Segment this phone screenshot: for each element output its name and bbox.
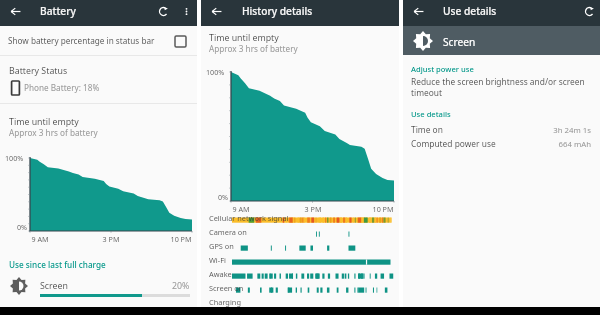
staticText: Awake [209, 269, 232, 279]
staticText: 10 PM [367, 204, 399, 214]
staticText: Charging [209, 297, 241, 307]
staticText: Use details [411, 109, 451, 119]
staticText: Approx 3 hrs of battery [209, 43, 298, 54]
staticText: 20% [172, 280, 190, 292]
staticText: Screen on [209, 283, 244, 293]
staticText: Time until empty [9, 116, 79, 128]
staticText: Cellular network signal [209, 213, 289, 223]
staticText: Battery [40, 4, 76, 18]
staticText: 3 PM [299, 204, 327, 214]
staticText: Adjust power use [411, 64, 474, 74]
staticText: Approx 3 hrs of battery [9, 127, 98, 138]
staticText: 0% [17, 222, 28, 232]
button[interactable]: Refresh [152, 0, 174, 22]
staticText: Screen [40, 280, 68, 292]
staticText: 100% [5, 153, 24, 163]
staticText: Use details [443, 4, 497, 18]
button[interactable]: Back [403, 0, 433, 26]
staticText: 664 mAh [503, 139, 591, 150]
button[interactable]: Refresh [578, 0, 600, 22]
button[interactable]: Screen [0, 271, 197, 307]
button[interactable]: Screen [403, 26, 600, 55]
staticText: Reduce the screen brightness and/or scre… [411, 76, 591, 98]
button[interactable]: Show battery percentage in status bar [0, 26, 197, 55]
button[interactable]: Back [0, 0, 30, 26]
staticText: Computed power use [411, 138, 496, 149]
staticText: History details [242, 4, 313, 18]
staticText: Battery Status [9, 65, 68, 77]
staticText: Time until empty [209, 32, 279, 44]
staticText: Wi-Fi [209, 255, 226, 265]
staticText: 9 AM [227, 204, 255, 214]
staticText: 0% [218, 192, 229, 202]
staticText: 3h 24m 1s [503, 125, 591, 136]
button[interactable]: More options [176, 0, 196, 22]
staticText: Use since last full charge [9, 259, 106, 270]
staticText: Time on [411, 124, 443, 135]
staticText: GPS on [209, 241, 234, 251]
staticText: Show battery percentage in status bar [8, 35, 155, 46]
button[interactable]: Back [201, 0, 231, 26]
staticText: Phone Battery: 18% [24, 82, 100, 93]
staticText: 3 PM [97, 234, 125, 244]
staticText: Camera on [209, 227, 247, 237]
staticText: 100% [206, 67, 225, 77]
staticText: Screen [443, 35, 476, 49]
staticText: 9 AM [26, 234, 54, 244]
staticText: 10 PM [165, 234, 197, 244]
